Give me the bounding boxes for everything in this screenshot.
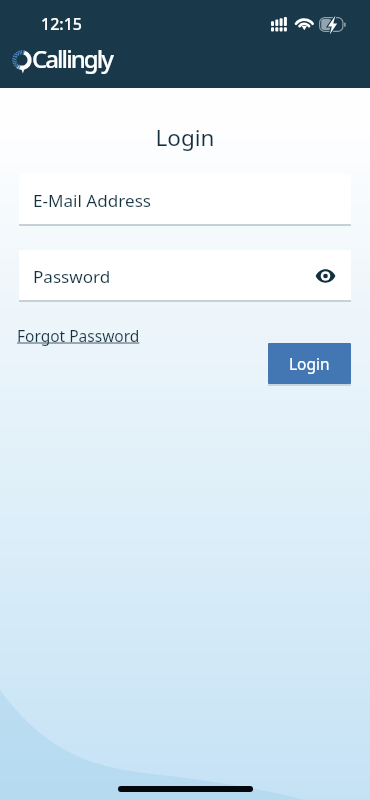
staticText: Login — [289, 353, 330, 374]
staticText: Password — [33, 265, 111, 288]
button[interactable]: Login — [268, 343, 351, 384]
button[interactable]: Show password — [312, 263, 338, 289]
button[interactable]: Forgot Password — [17, 325, 140, 346]
staticText: Forgot Password — [17, 325, 140, 346]
staticText: Callingly — [32, 42, 112, 75]
button[interactable]: E-Mail Address — [19, 174, 351, 226]
staticText: E-Mail Address — [33, 189, 152, 212]
button[interactable]: Password — [19, 250, 351, 302]
staticText: Login — [0, 122, 370, 153]
staticText: 12:15 — [41, 13, 82, 35]
